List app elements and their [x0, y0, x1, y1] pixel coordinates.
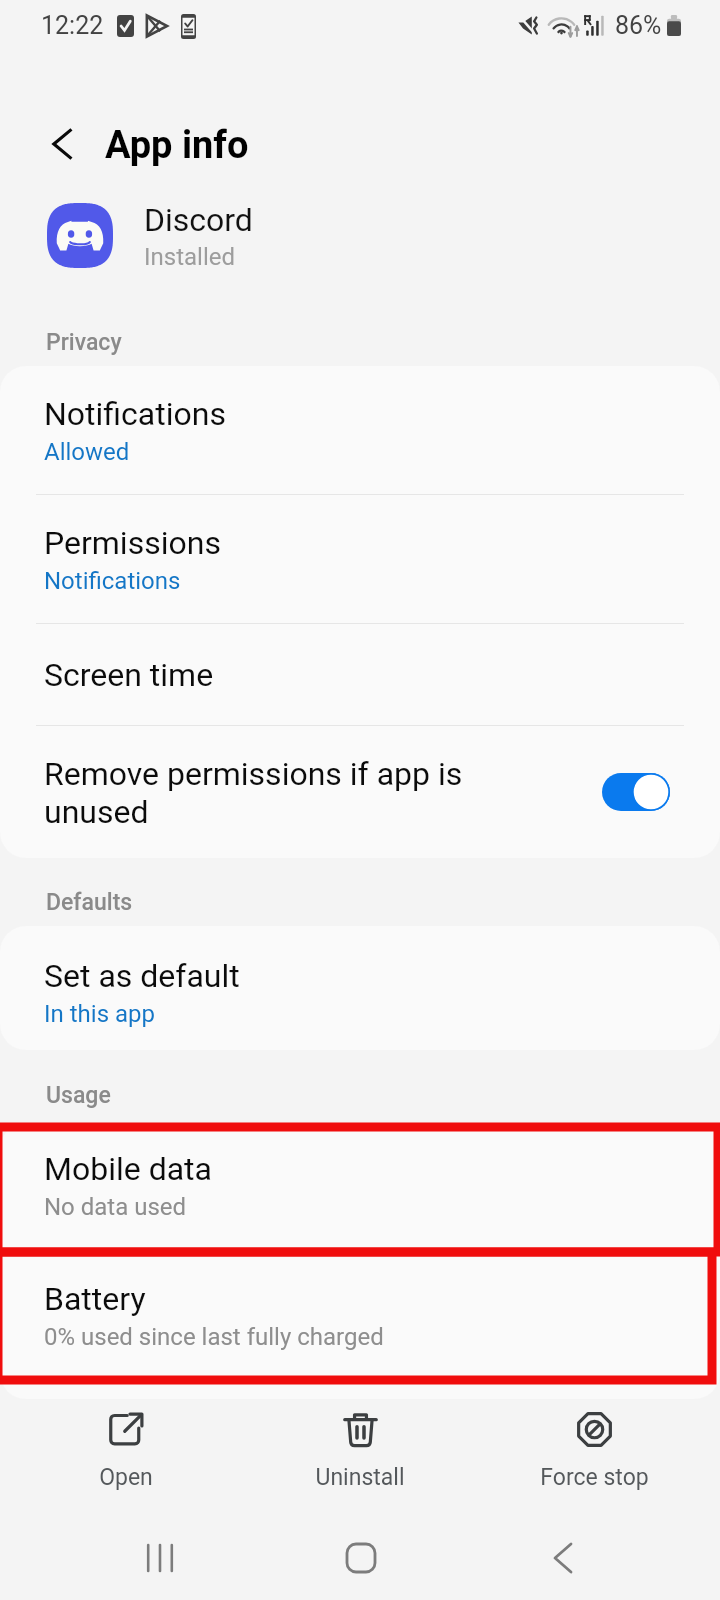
- button[interactable]: Back: [515, 1510, 611, 1600]
- button[interactable]: Recent apps: [112, 1510, 208, 1600]
- staticText: Mobile data: [44, 1150, 212, 1188]
- button[interactable]: Remove permissions if app is unused: [0, 726, 720, 858]
- staticText: Uninstall: [315, 1464, 405, 1491]
- staticText: Force stop: [540, 1464, 649, 1491]
- button[interactable]: Home: [313, 1510, 409, 1600]
- staticText: Notifications: [44, 395, 226, 433]
- button[interactable]: Navigate up: [34, 113, 90, 169]
- staticText: Remove permissions if app is unused: [44, 755, 504, 831]
- button[interactable]: Permissions: [0, 495, 720, 623]
- staticText: 12:22: [41, 11, 104, 40]
- button[interactable]: Notifications: [0, 366, 720, 494]
- button[interactable]: Battery: [0, 1253, 720, 1383]
- staticText: Open: [99, 1464, 153, 1491]
- staticText: Privacy: [46, 329, 122, 356]
- staticText: Defaults: [46, 889, 133, 916]
- staticText: Discord: [144, 201, 253, 239]
- button[interactable]: Mobile data: [0, 1123, 720, 1253]
- staticText: App info: [105, 123, 249, 168]
- staticText: Installed: [144, 243, 236, 271]
- staticText: Allowed: [44, 438, 130, 466]
- staticText: Notifications: [44, 567, 181, 595]
- staticText: 0% used since last fully charged: [44, 1323, 384, 1351]
- staticText: Battery: [44, 1280, 146, 1318]
- button[interactable]: Set as default: [0, 926, 720, 1050]
- staticText: Screen time: [44, 656, 214, 694]
- staticText: No data used: [44, 1193, 187, 1221]
- staticText: Set as default: [44, 957, 240, 995]
- staticText: 86%: [615, 11, 662, 40]
- button[interactable]: Remove permissions toggle, on: [602, 773, 670, 811]
- button[interactable]: Screen time: [0, 624, 720, 725]
- button[interactable]: Open: [9, 1399, 243, 1504]
- staticText: Permissions: [44, 524, 221, 562]
- staticText: Usage: [46, 1082, 111, 1109]
- staticText: In this app: [44, 1000, 155, 1028]
- button[interactable]: Uninstall: [243, 1399, 477, 1504]
- button[interactable]: Force stop: [477, 1399, 711, 1504]
